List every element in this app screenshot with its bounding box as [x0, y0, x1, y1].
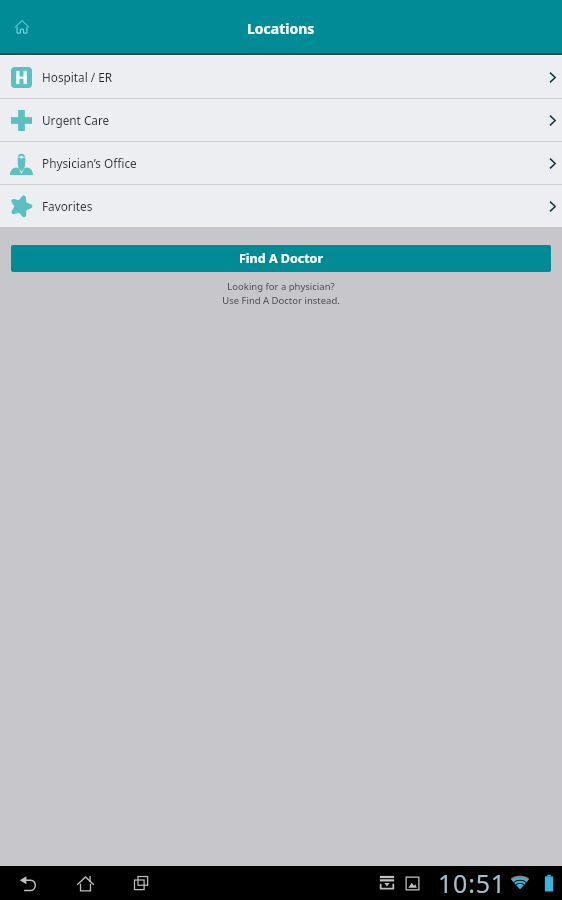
staticText: Locations — [247, 19, 315, 38]
button[interactable]: Find A Doctor — [11, 245, 551, 272]
staticText: Physician’s Office — [42, 155, 137, 171]
staticText: Urgent Care — [42, 112, 110, 128]
button[interactable]: Hospital / ER — [0, 56, 562, 98]
button[interactable]: Back — [0, 866, 57, 900]
button[interactable]: Physician’s Office — [0, 142, 562, 184]
staticText: Hospital / ER — [42, 69, 113, 85]
button[interactable]: Urgent Care — [0, 99, 562, 141]
staticText: Favorites — [42, 198, 93, 214]
button[interactable]: Home — [57, 866, 113, 900]
button[interactable]: Favorites — [0, 185, 562, 227]
staticText: Find A Doctor — [239, 250, 324, 267]
staticText: 10:51 — [438, 866, 506, 900]
staticText: Looking for a physician? Use Find A Doct… — [0, 280, 562, 306]
button[interactable]: Home — [6, 11, 38, 43]
button[interactable]: Recent apps — [113, 866, 169, 900]
